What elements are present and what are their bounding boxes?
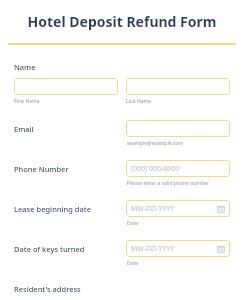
staticText: Hotel Deposit Refund Form — [0, 12, 244, 31]
button[interactable] — [14, 78, 118, 95]
staticText: Email — [14, 124, 34, 134]
staticText: Lease beginning date — [14, 204, 91, 214]
button[interactable]: Open calendar picker — [217, 205, 225, 213]
staticText: Date — [127, 260, 139, 267]
staticText: Date of keys turned — [14, 244, 85, 254]
staticText: MM-DD-YYYY — [131, 244, 175, 254]
button[interactable]: MM-DD-YYYY — [126, 200, 230, 217]
staticText: (000) 000-0000 — [131, 164, 180, 174]
staticText: Phone Number — [14, 164, 69, 174]
button[interactable]: MM-DD-YYYY — [126, 240, 230, 257]
button[interactable]: Open calendar picker — [217, 245, 225, 253]
staticText: Date — [127, 220, 139, 227]
staticText: First Name — [14, 98, 126, 105]
staticText: Last Name — [126, 98, 152, 105]
button[interactable] — [126, 78, 230, 95]
staticText: MM-DD-YYYY — [131, 204, 175, 214]
button[interactable]: (000) 000-0000 — [126, 160, 230, 177]
staticText: example@example.com — [127, 140, 183, 147]
button[interactable] — [126, 120, 230, 137]
staticText: Name — [14, 62, 36, 72]
staticText: Resident's address — [14, 284, 81, 294]
staticText: Please enter a valid phone number — [127, 180, 209, 187]
